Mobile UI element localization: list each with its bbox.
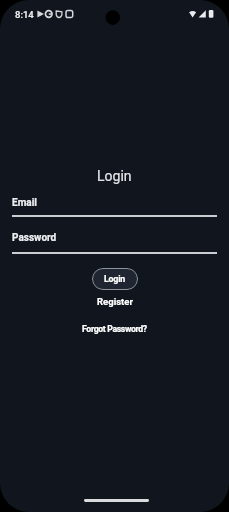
button[interactable]: Login (92, 268, 138, 290)
staticText: Login (104, 274, 126, 284)
staticText: Email (12, 197, 37, 209)
staticText: Password (12, 232, 57, 244)
staticText: Register (97, 296, 133, 307)
button[interactable]: Email (12, 197, 217, 217)
staticText: 8:14 (15, 9, 34, 20)
button[interactable]: Forgot Password? (82, 324, 147, 334)
staticText: Forgot Password? (82, 324, 147, 334)
button[interactable]: Password (12, 232, 217, 254)
button[interactable]: Register (97, 296, 133, 307)
staticText: Login (97, 168, 132, 184)
